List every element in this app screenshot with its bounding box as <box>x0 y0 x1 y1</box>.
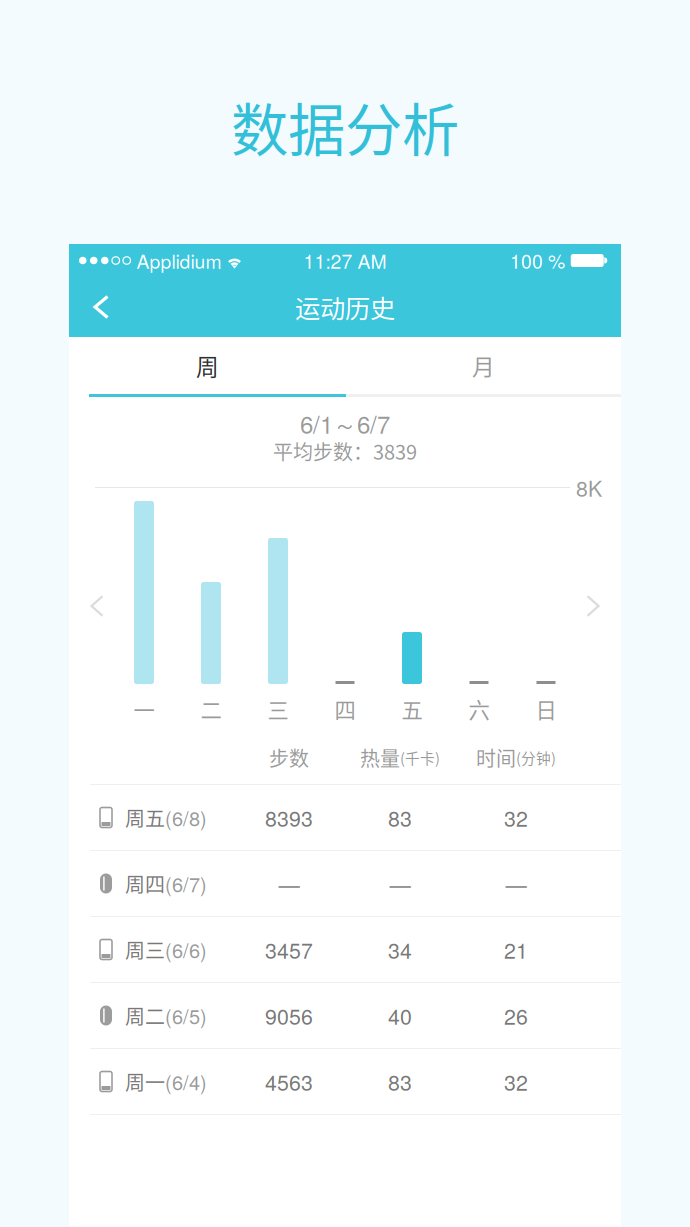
button[interactable]: 周二 <box>69 983 621 1049</box>
staticText: 83 <box>388 802 412 833</box>
staticText: 6/1～6/7 <box>300 406 390 441</box>
staticText: 三 <box>267 694 288 724</box>
staticText: 9056 <box>265 1000 313 1031</box>
staticText: (6/5) <box>165 1001 207 1030</box>
staticText: 日 <box>535 694 556 724</box>
staticText: 周二 <box>125 1001 165 1030</box>
button[interactable]: 周四 <box>69 851 621 917</box>
staticText: 周五 <box>125 803 165 832</box>
staticText: 平均步数：3839 <box>273 436 417 465</box>
staticText: 4563 <box>265 1066 313 1097</box>
button[interactable]: 月 <box>346 337 621 394</box>
staticText: — <box>389 868 410 899</box>
button[interactable]: Back <box>69 277 129 337</box>
button[interactable]: Previous week <box>69 577 118 635</box>
staticText: 一 <box>133 694 154 724</box>
staticText: 周三 <box>125 935 165 964</box>
button[interactable]: 周五 <box>69 785 621 851</box>
staticText: 周一 <box>125 1067 165 1096</box>
staticText: 周 <box>196 349 219 382</box>
staticText: 四 <box>334 694 355 724</box>
staticText: (6/8) <box>165 803 207 832</box>
staticText: (分钟) <box>516 747 556 768</box>
staticText: (6/6) <box>165 935 207 964</box>
staticText: 83 <box>388 1066 412 1097</box>
staticText: 32 <box>504 1066 528 1097</box>
staticText: 100 % <box>510 247 565 274</box>
staticText: 8393 <box>265 802 313 833</box>
button[interactable]: Next week <box>572 577 621 635</box>
button[interactable]: 周一 <box>69 1049 621 1115</box>
staticText: Applidium <box>136 247 221 274</box>
staticText: 26 <box>504 1000 528 1031</box>
button[interactable]: 周三 <box>69 917 621 983</box>
staticText: 周四 <box>125 869 165 898</box>
staticText: 21 <box>504 934 528 965</box>
staticText: 六 <box>468 694 489 724</box>
staticText: 月 <box>472 349 495 382</box>
staticText: 数据分析 <box>231 84 459 167</box>
staticText: 11:27 AM <box>303 247 386 274</box>
staticText: 34 <box>388 934 412 965</box>
staticText: 二 <box>200 694 221 724</box>
staticText: 五 <box>401 694 422 724</box>
staticText: 8K <box>576 472 602 503</box>
staticText: (6/4) <box>165 1067 207 1096</box>
button[interactable]: 周 <box>69 337 346 394</box>
staticText: (千卡) <box>400 747 440 768</box>
staticText: 时间 <box>476 743 516 772</box>
staticText: 40 <box>388 1000 412 1031</box>
staticText: — <box>505 868 526 899</box>
staticText: 3457 <box>265 934 313 965</box>
staticText: 步数 <box>269 743 309 772</box>
staticText: 32 <box>504 802 528 833</box>
staticText: (6/7) <box>165 869 207 898</box>
staticText: — <box>278 868 299 899</box>
staticText: 热量 <box>360 743 400 772</box>
staticText: 运动历史 <box>295 289 395 325</box>
